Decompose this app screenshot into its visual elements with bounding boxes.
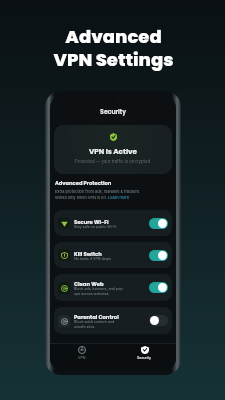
staticText: VPN is Active	[89, 146, 137, 156]
button[interactable]: Disabled	[149, 315, 168, 326]
button[interactable]: Clean Web	[54, 274, 172, 301]
staticText: Security	[50, 107, 176, 116]
staticText: Block adult content and unsafe sites	[74, 320, 115, 329]
button[interactable]: Enabled	[149, 282, 168, 293]
button[interactable]: Kill Switch	[54, 242, 172, 268]
staticText: Extra protection from ads, malware & tra…	[55, 189, 141, 194]
staticText: Advanced VPN Settings	[2, 24, 225, 72]
button[interactable]: Secure Wi-Fi	[54, 210, 172, 236]
button[interactable]: VPN	[50, 344, 113, 360]
staticText: Kill Switch	[74, 250, 102, 257]
staticText: Parental Control	[74, 313, 119, 320]
button[interactable]: Security	[113, 344, 176, 360]
staticText: Secure Wi-Fi	[74, 218, 109, 225]
button[interactable]: Enabled	[149, 218, 168, 229]
staticText: Security	[137, 356, 152, 360]
button[interactable]: Parental Control	[54, 307, 172, 334]
staticText: Block ads, banners, and pop- ups across …	[74, 287, 125, 296]
staticText: Stay safe on public Wi-Fi	[74, 225, 117, 229]
button[interactable]: Learn more	[108, 195, 130, 200]
staticText: No leaks if VPN drops	[74, 257, 112, 261]
staticText: Works only when VPN is on.	[55, 195, 108, 200]
staticText: VPN	[78, 356, 86, 360]
staticText: Protected — your traffic is encrypted	[75, 159, 151, 164]
staticText: Clean Web	[74, 280, 104, 287]
button[interactable]: Enabled	[149, 250, 168, 261]
staticText: Advanced Protection	[55, 180, 112, 187]
